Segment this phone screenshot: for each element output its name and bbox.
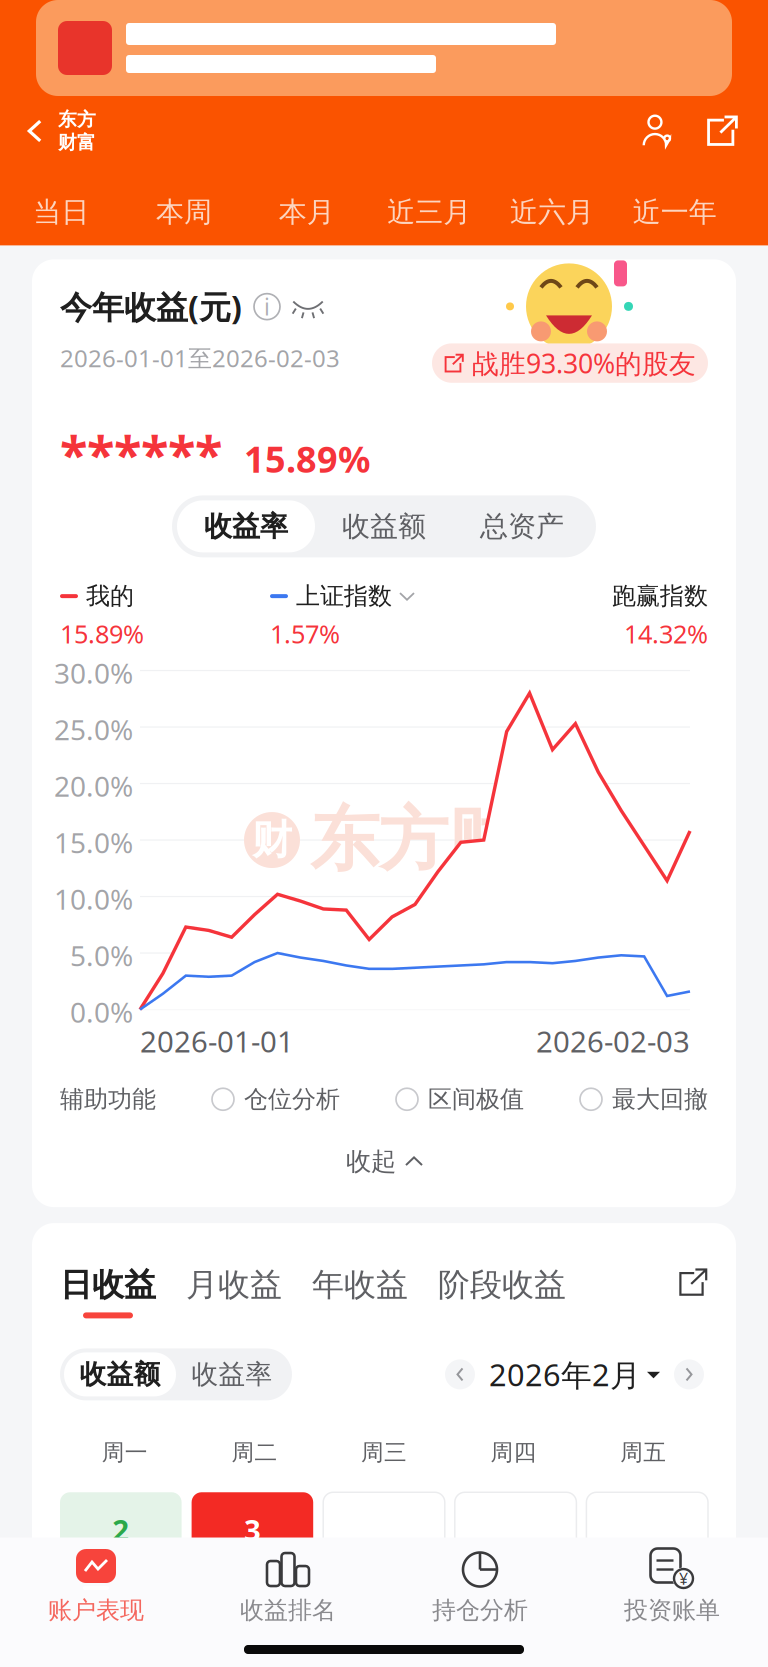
staticText: ****** <box>60 419 222 487</box>
button[interactable]: 持仓分析 <box>384 1537 576 1629</box>
button[interactable]: 近一年 <box>613 185 736 239</box>
staticText: 辅助功能 <box>60 1084 156 1114</box>
button[interactable]: Previous month <box>445 1359 475 1389</box>
staticText: 15.89% <box>244 435 370 483</box>
staticText: 2026-01-01至2026-02-03 <box>60 342 340 374</box>
staticText: 近六月 <box>510 195 594 229</box>
staticText: 收益额 <box>342 509 426 544</box>
button[interactable]: Share <box>678 1265 708 1297</box>
button[interactable]: 收益额 <box>64 1352 176 1396</box>
staticText: 当日 <box>33 195 89 229</box>
staticText: 15.0% <box>54 824 133 861</box>
staticText: 阶段收益 <box>438 1265 566 1304</box>
staticText: 持仓分析 <box>432 1595 528 1625</box>
staticText: 仓位分析 <box>244 1084 340 1114</box>
staticText: 收起 <box>346 1146 396 1177</box>
button[interactable]: 当日 <box>0 185 123 239</box>
button[interactable]: 近六月 <box>491 185 613 239</box>
button[interactable]: 日收益 <box>60 1265 156 1318</box>
staticText: 2 <box>112 1510 129 1549</box>
staticText: 我的 <box>86 581 134 611</box>
button[interactable]: 区间极值 <box>396 1084 524 1114</box>
staticText: 14.32% <box>624 617 708 650</box>
button[interactable]: Share <box>700 115 744 147</box>
staticText: 收益率 <box>204 509 288 544</box>
staticText: 3 <box>244 1510 261 1549</box>
staticText: 10.0% <box>54 880 133 917</box>
staticText: 2026年2月 <box>489 1354 641 1395</box>
staticText: i <box>264 292 270 322</box>
staticText: 本月 <box>279 195 335 229</box>
button[interactable]: 月收益 <box>186 1265 282 1304</box>
staticText: 账户表现 <box>48 1595 144 1625</box>
button[interactable]: 本月 <box>245 185 368 239</box>
staticText: 战胜93.30%的股友 <box>472 345 696 381</box>
button[interactable]: 收益率 <box>177 500 315 552</box>
staticText: 今年收益(元) <box>60 285 242 328</box>
staticText: 日收益 <box>60 1265 156 1304</box>
staticText: ¥ <box>679 1568 688 1589</box>
button[interactable]: 东方 <box>0 102 96 160</box>
button[interactable]: 阶段收益 <box>438 1265 566 1304</box>
button[interactable]: 总资产 <box>453 500 591 552</box>
staticText: 月收益 <box>186 1265 282 1304</box>
staticText: 财 <box>252 815 292 865</box>
staticText: 近三月 <box>387 195 471 229</box>
button[interactable]: 收益额 <box>315 500 453 552</box>
button[interactable]: 年收益 <box>312 1265 408 1304</box>
button[interactable]: 收益排名 <box>192 1537 384 1629</box>
button[interactable]: 收益率 <box>176 1352 288 1396</box>
button[interactable]: 战胜93.30%的股友 <box>432 343 708 383</box>
staticText: 东方财富 <box>310 797 586 883</box>
staticText: 本周 <box>156 195 212 229</box>
button[interactable]: 最大回撤 <box>580 1084 708 1114</box>
staticText: 15.89% <box>60 617 144 650</box>
staticText: 2026-02-03 <box>536 1021 690 1060</box>
staticText: 5.0% <box>70 937 133 974</box>
button[interactable]: Next month <box>674 1359 704 1389</box>
staticText: 周一 <box>102 1438 148 1466</box>
staticText: 年收益 <box>312 1265 408 1304</box>
staticText: 收益排名 <box>240 1595 336 1625</box>
staticText: 1.57% <box>270 617 340 650</box>
staticText: 最大回撤 <box>612 1084 708 1114</box>
staticText: 20.0% <box>54 767 133 804</box>
staticText: 投资账单 <box>624 1595 720 1625</box>
button[interactable]: 近三月 <box>368 185 491 239</box>
staticText: 区间极值 <box>428 1084 524 1114</box>
staticText: 周四 <box>491 1438 537 1466</box>
staticText: 2026-01-01 <box>140 1021 294 1060</box>
staticText: 收益率 <box>191 1358 272 1391</box>
staticText: 25.0% <box>54 711 133 748</box>
staticText: 0.0% <box>70 993 133 1030</box>
staticText: 周五 <box>620 1438 666 1466</box>
button[interactable]: 收起 <box>60 1144 708 1179</box>
button[interactable]: Account <box>634 114 680 148</box>
staticText: 收益额 <box>79 1358 160 1391</box>
staticText: 近一年 <box>633 195 717 229</box>
staticText: 财富 <box>58 131 96 154</box>
staticText: 30.0% <box>54 654 133 691</box>
staticText: 跑赢指数 <box>612 581 708 611</box>
staticText: 总资产 <box>480 509 564 544</box>
button[interactable]: 本周 <box>123 185 245 239</box>
staticText: 上证指数 <box>296 581 392 611</box>
staticText: 周三 <box>361 1438 407 1466</box>
button[interactable]: 仓位分析 <box>212 1084 340 1114</box>
button[interactable]: 账户表现 <box>0 1537 192 1629</box>
staticText: 东方 <box>58 108 96 131</box>
staticText: 周二 <box>231 1438 277 1466</box>
button[interactable]: ¥ <box>576 1537 768 1629</box>
